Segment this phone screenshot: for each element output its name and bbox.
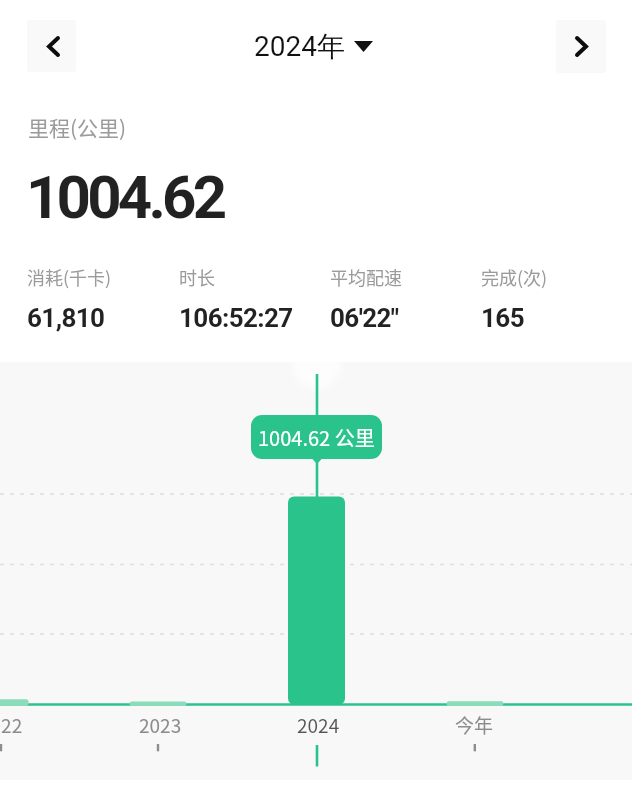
button[interactable]: Next (556, 20, 606, 73)
staticText: 1004.62 公里 (258, 423, 375, 452)
button[interactable]: Back (27, 20, 76, 72)
staticText: 平均配速 (330, 264, 402, 290)
button[interactable]: 2024年 (254, 29, 345, 64)
staticText: 时长 (179, 264, 215, 290)
staticText: 1004.62 (26, 162, 224, 232)
staticText: 06′22″ (330, 303, 399, 333)
staticText: 消耗(千卡) (27, 264, 112, 290)
staticText: 里程(公里) (28, 112, 127, 142)
staticText: 完成(次) (481, 264, 548, 290)
staticText: 2024年 (254, 29, 345, 64)
staticText: 106:52:27 (179, 303, 293, 333)
staticText: 61,810 (27, 303, 105, 333)
staticText: 2022 (0, 711, 23, 739)
staticText: 2024 (297, 711, 340, 739)
staticText: 今年 (455, 711, 494, 739)
staticText: 165 (481, 303, 524, 333)
staticText: 2023 (139, 711, 182, 739)
